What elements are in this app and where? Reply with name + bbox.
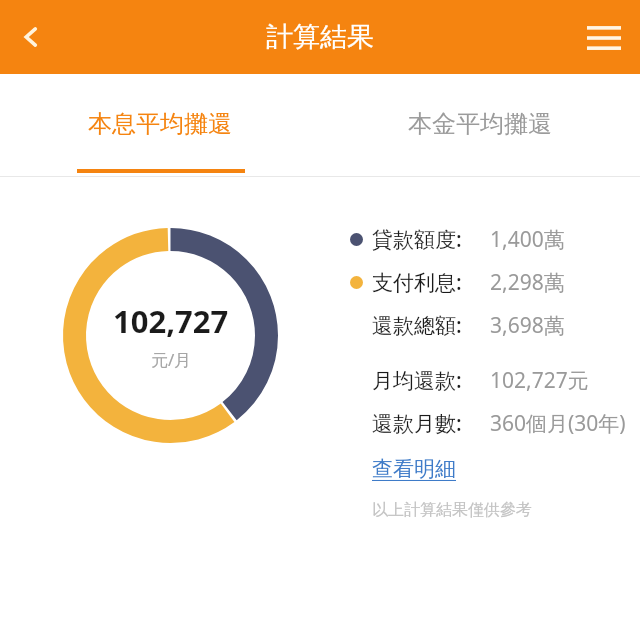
staticText: 月均還款: (372, 366, 462, 395)
staticText: 360個月(30年) (490, 409, 626, 438)
staticText: 2,298萬 (490, 268, 565, 297)
staticText: 計算結果 (266, 20, 374, 54)
staticText: 還款月數: (372, 409, 462, 438)
staticText: 還款總額: (372, 311, 462, 340)
staticText: 查看明細 (372, 456, 456, 482)
staticText: 3,698萬 (490, 311, 565, 340)
button[interactable]: 本金平均攤還 (320, 74, 640, 177)
staticText: 以上計算結果僅供參考 (372, 500, 532, 520)
staticText: 1,400萬 (490, 225, 565, 254)
staticText: 貸款額度: (372, 225, 462, 254)
staticText: 元/月 (151, 348, 192, 371)
staticText: 102,727元 (490, 366, 589, 395)
button[interactable]: 本息平均攤還 (0, 74, 320, 177)
staticText: 102,727 (113, 300, 229, 342)
button[interactable]: Back (0, 0, 62, 74)
staticText: 本金平均攤還 (408, 109, 552, 139)
button[interactable]: Menu (568, 0, 640, 74)
button[interactable]: 查看明細 (372, 454, 456, 484)
staticText: 支付利息: (372, 268, 462, 297)
staticText: 本息平均攤還 (88, 109, 232, 139)
